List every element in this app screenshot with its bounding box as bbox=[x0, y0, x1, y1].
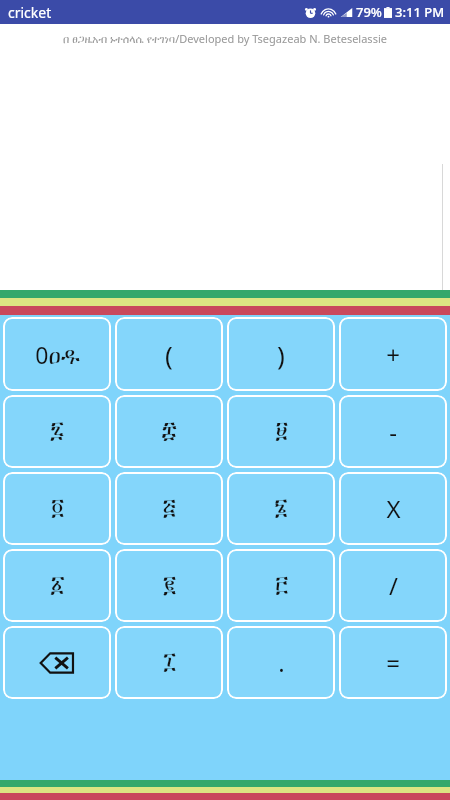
button[interactable]: X bbox=[339, 472, 447, 545]
staticText: ፯ bbox=[50, 420, 64, 443]
button[interactable]: / bbox=[339, 549, 447, 622]
button[interactable]: ፩ bbox=[3, 549, 111, 622]
button[interactable]: ፱ bbox=[227, 395, 335, 468]
staticText: 3:11 PM bbox=[395, 3, 445, 21]
button[interactable]: ፪ bbox=[115, 549, 223, 622]
staticText: ፬ bbox=[51, 497, 64, 520]
button[interactable]: ፯ bbox=[3, 395, 111, 468]
staticText: cricket bbox=[8, 3, 52, 22]
staticText: 0ዐዱ bbox=[35, 339, 80, 370]
staticText: ፮ bbox=[274, 497, 288, 520]
staticText: ፩ bbox=[50, 574, 65, 597]
button[interactable]: = bbox=[339, 626, 447, 699]
button[interactable]: . bbox=[227, 626, 335, 699]
button[interactable]: + bbox=[339, 317, 447, 391]
staticText: X bbox=[386, 492, 401, 525]
button[interactable]: ፰ bbox=[115, 395, 223, 468]
staticText: በ ፀጋዜአብ ኑተሰላሴ የተገነባ/Developed by Tsegaze… bbox=[63, 31, 387, 46]
button[interactable]: 0ዐዱ bbox=[3, 317, 111, 391]
button[interactable]: ፲ bbox=[115, 626, 223, 699]
button[interactable]: Backspace bbox=[3, 626, 111, 699]
staticText: ( bbox=[165, 337, 173, 372]
staticText: 79% bbox=[356, 3, 382, 21]
button[interactable]: ) bbox=[227, 317, 335, 391]
staticText: + bbox=[386, 338, 400, 371]
staticText: / bbox=[389, 569, 398, 602]
staticText: ፲ bbox=[163, 651, 176, 674]
staticText: ፪ bbox=[163, 574, 176, 597]
staticText: ፭ bbox=[162, 497, 176, 520]
staticText: - bbox=[389, 415, 397, 448]
button[interactable]: ፫ bbox=[227, 549, 335, 622]
button[interactable]: ፬ bbox=[3, 472, 111, 545]
button[interactable]: ( bbox=[115, 317, 223, 391]
staticText: = bbox=[386, 646, 400, 679]
staticText: ፱ bbox=[275, 420, 288, 443]
staticText: ) bbox=[277, 337, 285, 372]
staticText: . bbox=[278, 646, 285, 679]
staticText: ፫ bbox=[275, 574, 288, 597]
button[interactable]: ፮ bbox=[227, 472, 335, 545]
button[interactable]: ፭ bbox=[115, 472, 223, 545]
button[interactable]: - bbox=[339, 395, 447, 468]
staticText: ፰ bbox=[161, 420, 177, 443]
